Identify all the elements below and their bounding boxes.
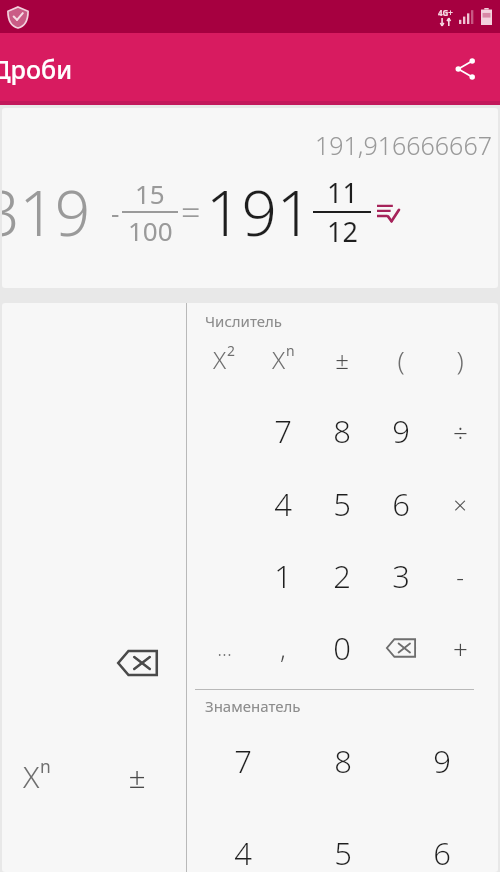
button[interactable]: Backspace	[372, 619, 430, 677]
staticText: 2	[227, 341, 235, 360]
button[interactable]: 7	[254, 402, 312, 460]
button[interactable]: 9	[413, 732, 471, 790]
button[interactable]: ,	[254, 619, 312, 677]
button[interactable]: 6	[413, 824, 471, 872]
button[interactable]: 9	[372, 402, 430, 460]
staticText: 5	[333, 483, 351, 525]
staticText: 191	[206, 170, 313, 254]
staticText: ±	[128, 756, 146, 797]
staticText: 3	[392, 555, 410, 597]
staticText: 0	[333, 627, 351, 669]
button[interactable]: +	[431, 619, 489, 677]
staticText: 319	[2, 170, 91, 254]
button[interactable]: 8	[313, 402, 371, 460]
button[interactable]: 2	[313, 547, 371, 605]
button[interactable]: X	[254, 330, 312, 388]
staticText: Числитель	[205, 311, 282, 331]
staticText: ...	[217, 635, 232, 662]
staticText: 6	[392, 483, 410, 525]
button[interactable]: X	[195, 330, 253, 388]
button[interactable]: (	[372, 330, 430, 388]
staticText: -	[456, 560, 464, 593]
staticText: 100	[128, 213, 173, 248]
staticText: 7	[234, 740, 252, 782]
staticText: 7	[274, 410, 292, 452]
staticText: Дроби	[0, 52, 73, 86]
button[interactable]: 5	[313, 475, 371, 533]
button[interactable]: 5	[314, 824, 372, 872]
staticText: 4	[234, 832, 252, 872]
staticText: 8	[333, 410, 351, 452]
button[interactable]: 8	[314, 732, 372, 790]
staticText: 9	[392, 410, 410, 452]
button[interactable]: 1	[254, 547, 312, 605]
staticText: 6	[433, 832, 451, 872]
staticText: ÷	[453, 414, 468, 449]
button[interactable]: ×	[431, 475, 489, 533]
staticText: (	[397, 342, 405, 377]
staticText: Знаменатель	[205, 696, 301, 716]
staticText: 9	[433, 740, 451, 782]
button[interactable]: ÷	[431, 402, 489, 460]
button[interactable]: 3	[372, 547, 430, 605]
button[interactable]: X	[8, 747, 66, 805]
button[interactable]: Share	[442, 46, 488, 92]
button[interactable]: ±	[313, 330, 371, 388]
button[interactable]: 4	[254, 475, 312, 533]
staticText: )	[456, 342, 464, 377]
staticText: n	[286, 341, 295, 360]
staticText: 5	[334, 832, 352, 872]
button[interactable]: 191,916666667	[2, 108, 498, 288]
button[interactable]: 6	[372, 475, 430, 533]
staticText: 2	[333, 555, 351, 597]
staticText: 12	[327, 213, 358, 250]
staticText: ,	[280, 631, 286, 666]
button[interactable]: Backspace	[105, 631, 169, 695]
other: Backspace	[117, 648, 158, 678]
button[interactable]: ±	[108, 747, 166, 805]
staticText: n	[40, 754, 51, 778]
staticText: ±	[335, 343, 349, 376]
button[interactable]: 4	[214, 824, 272, 872]
staticText: 4G+	[438, 7, 453, 18]
button[interactable]: 0	[313, 619, 371, 677]
button[interactable]: ...	[195, 619, 253, 677]
staticText: 1	[274, 555, 292, 597]
staticText: 15	[135, 176, 165, 211]
button[interactable]: 7	[214, 732, 272, 790]
staticText: -	[111, 195, 120, 230]
staticText: =	[181, 189, 201, 235]
staticText: ×	[453, 488, 467, 521]
staticText: +	[453, 631, 468, 666]
staticText: X	[272, 343, 286, 376]
staticText: 191,916666667	[315, 128, 492, 162]
staticText: 4	[274, 483, 292, 525]
staticText: X	[213, 343, 227, 376]
button[interactable]: -	[431, 547, 489, 605]
other: Backspace	[386, 637, 416, 659]
button[interactable]: Result options	[375, 199, 401, 225]
button[interactable]: )	[431, 330, 489, 388]
staticText: X	[23, 756, 40, 797]
staticText: 8	[334, 740, 352, 782]
staticText: 11	[327, 174, 358, 211]
